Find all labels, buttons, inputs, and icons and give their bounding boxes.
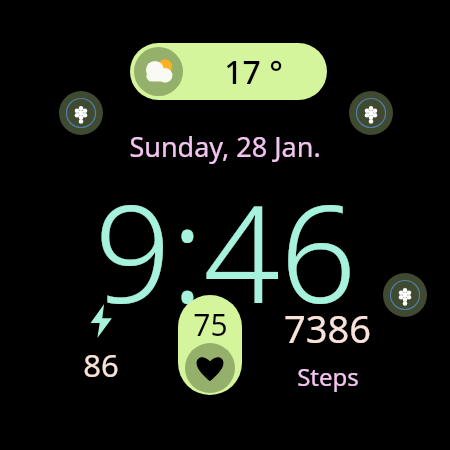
button[interactable]: 7386 — [272, 302, 382, 394]
staticText: Sunday, 28 Jan. — [129, 128, 321, 165]
staticText: 86 — [83, 344, 119, 386]
button[interactable]: 17 ° — [130, 43, 327, 100]
button[interactable]: 75 — [178, 295, 242, 395]
button[interactable]: Complication — [59, 91, 103, 135]
staticText: Steps — [297, 360, 359, 393]
staticText: 7386 — [284, 302, 371, 354]
button[interactable]: Battery 86 percent — [72, 298, 130, 390]
staticText: 17 ° — [224, 50, 283, 94]
button[interactable]: Complication — [383, 273, 427, 317]
button[interactable]: Sunday, 28 Jan. — [0, 128, 450, 450]
staticText: 9:46 — [94, 160, 357, 343]
staticText: 75 — [193, 304, 228, 345]
button[interactable]: Complication — [349, 91, 393, 135]
